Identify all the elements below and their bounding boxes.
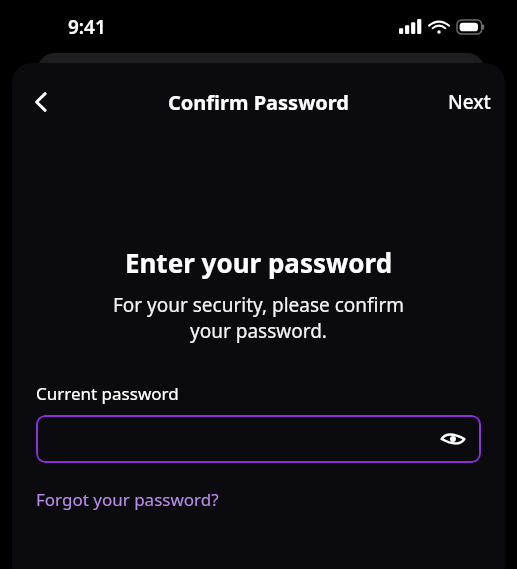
staticText: For your security, please confirm your p… <box>32 292 485 344</box>
staticText: Current password <box>36 382 179 405</box>
staticText: Next <box>448 89 491 115</box>
staticText: Forgot your password? <box>36 488 219 511</box>
button[interactable]: Next <box>434 81 505 123</box>
button[interactable]: Show password <box>36 415 481 463</box>
staticText: 9:41 <box>68 14 106 40</box>
staticText: Enter your password <box>32 245 485 280</box>
button[interactable]: Show password <box>435 421 471 457</box>
staticText: Confirm Password <box>168 89 349 116</box>
button[interactable]: Back <box>18 79 64 125</box>
button[interactable]: Forgot your password? <box>32 485 223 514</box>
